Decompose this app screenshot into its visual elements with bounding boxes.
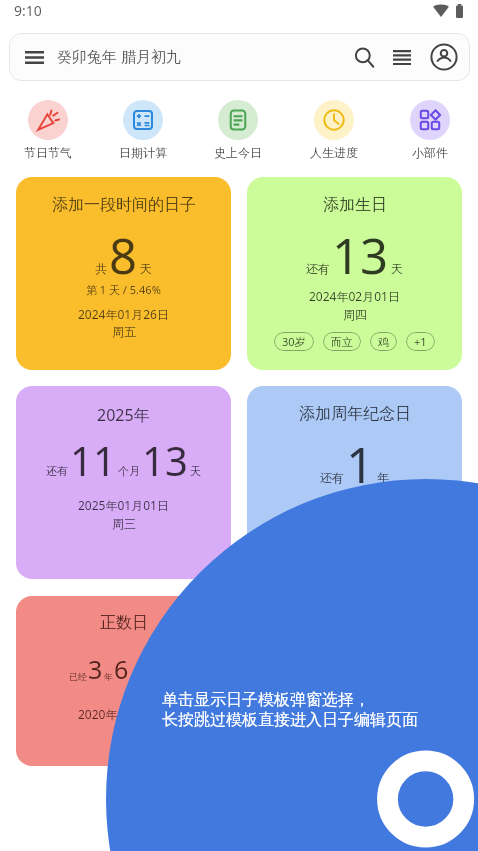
staticText: 30岁 (282, 334, 306, 349)
staticText: 癸卯兔年 腊月初九 (57, 46, 181, 66)
staticText: 周五 (112, 724, 136, 739)
button[interactable]: 添加周年纪念日 (247, 386, 462, 579)
button[interactable]: 小部件 (382, 100, 478, 160)
staticText: 个月 (118, 464, 140, 478)
staticText: 周三 (112, 516, 136, 531)
staticText: 月 (130, 671, 139, 682)
staticText: 第 1 天 / 5.46% (86, 282, 161, 297)
staticText: 还有 (46, 464, 68, 478)
staticText: 日期计算 (119, 145, 167, 160)
button[interactable]: 史上今日 (190, 100, 286, 160)
staticText: 还有 (306, 261, 330, 276)
staticText: 鸡 (378, 335, 389, 349)
staticText: 而立 (331, 335, 353, 349)
staticText: 13 (332, 222, 389, 289)
button[interactable]: 日期计算 (95, 100, 190, 160)
staticText: 13 (142, 433, 188, 487)
button[interactable]: Menu (9, 33, 470, 81)
staticText: 8 (109, 222, 138, 289)
staticText: 天 (391, 261, 403, 276)
button[interactable]: Search (349, 42, 379, 72)
button[interactable]: +1 (406, 332, 435, 351)
staticText: 人生进度 (310, 145, 358, 160)
staticText: +1 (414, 334, 427, 349)
staticText: 已经 (69, 671, 87, 682)
staticText: 15 (140, 652, 169, 686)
button[interactable]: 鸡 (370, 332, 397, 351)
staticText: 共 (95, 261, 107, 276)
button[interactable]: Account (428, 41, 460, 73)
staticText: 周五 (112, 324, 136, 339)
button[interactable]: 节日节气 (0, 100, 95, 160)
staticText: 添加生日 (323, 195, 387, 215)
staticText: 小部件 (412, 145, 448, 160)
staticText: 3 (88, 652, 103, 686)
button[interactable]: 添加生日 (247, 177, 462, 370)
staticText: 11 (70, 433, 116, 487)
button[interactable]: 正数日 (16, 596, 231, 766)
staticText: 年 (104, 671, 113, 682)
staticText: 2020年08月07日 (78, 706, 169, 722)
button[interactable]: 添加一段时间的日子 (16, 177, 231, 370)
button[interactable]: Menu (22, 42, 46, 72)
button[interactable]: 人生进度 (286, 100, 382, 160)
staticText: 2025年01月01日 (309, 497, 400, 513)
button[interactable]: 30岁 (274, 332, 314, 351)
button[interactable]: List view (387, 42, 417, 72)
staticText: 节日节气 (24, 145, 72, 160)
staticText: 天 (140, 261, 152, 276)
staticText: 添加一段时间的日子 (52, 195, 196, 215)
button[interactable]: 单击显示日子模板弹窗选择， 长按跳过模板直接进入日子编辑页面 (162, 690, 418, 730)
button[interactable]: 2025年 (16, 386, 231, 579)
staticText: 2024年01月26日 (78, 306, 169, 322)
staticText: 添加周年纪念日 (299, 404, 411, 424)
staticText: 周四 (343, 307, 367, 322)
staticText: 1 (346, 431, 375, 498)
staticText: 天 (190, 464, 201, 478)
staticText: 正数日 (100, 613, 148, 633)
staticText: 还有 (320, 470, 344, 485)
staticText: 2024年02月01日 (309, 288, 400, 304)
button[interactable]: 而立 (323, 332, 361, 351)
staticText: 年 (377, 470, 389, 485)
staticText: 6 (114, 652, 129, 686)
staticText: 9:10 (14, 1, 42, 20)
staticText: 2025年01月01日 (78, 497, 169, 513)
staticText: 史上今日 (214, 145, 262, 160)
staticText: 2025年 (97, 404, 150, 426)
